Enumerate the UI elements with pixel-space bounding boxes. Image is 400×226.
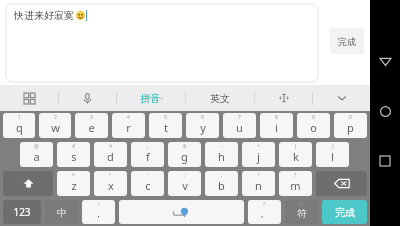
- staticText: 拼音·: [140, 91, 163, 105]
- staticText: ?: [263, 201, 266, 208]
- button[interactable]: 2: [39, 113, 71, 138]
- staticText: ?: [294, 172, 297, 179]
- button[interactable]: 4: [112, 113, 145, 138]
- staticText: n: [255, 178, 262, 193]
- button[interactable]: 123: [3, 200, 41, 224]
- staticText: 符: [297, 207, 307, 220]
- staticText: p: [347, 120, 354, 135]
- button[interactable]: Voice input: [59, 85, 116, 111]
- staticText: 6: [201, 114, 204, 121]
- button[interactable]: (: [279, 142, 312, 167]
- staticText: &: [183, 143, 187, 150]
- button[interactable]: Back: [374, 50, 396, 72]
- staticText: ￥: [108, 143, 113, 149]
- button[interactable]: Shift: [3, 171, 53, 196]
- button[interactable]: 快进来好寂寞: [6, 4, 318, 82]
- button[interactable]: :: [168, 171, 201, 196]
- button[interactable]: 0: [334, 113, 367, 138]
- button[interactable]: Move cursor: [255, 85, 312, 111]
- staticText: k: [293, 149, 299, 164]
- staticText: 完成: [335, 206, 355, 219]
- staticText: 2: [54, 114, 57, 121]
- staticText: f: [146, 149, 150, 164]
- staticText: z: [71, 178, 77, 193]
- button[interactable]: Keyboard layouts: [0, 85, 58, 111]
- staticText: ;: [221, 172, 223, 179]
- staticText: !: [98, 201, 100, 208]
- button[interactable]: @: [20, 142, 53, 167]
- staticText: 。: [260, 208, 269, 219]
- button[interactable]: !: [242, 171, 275, 196]
- button[interactable]: 3: [75, 113, 108, 138]
- button[interactable]: Space: [119, 200, 244, 224]
- staticText: b: [218, 178, 225, 193]
- button[interactable]: 拼音·: [117, 85, 185, 111]
- staticText: 7: [238, 114, 241, 121]
- staticText: ，: [94, 208, 103, 219]
- button[interactable]: 完成: [322, 200, 367, 224]
- staticText: t: [164, 120, 168, 135]
- button[interactable]: ': [131, 171, 164, 196]
- staticText: :: [184, 172, 186, 179]
- button[interactable]: +: [242, 142, 275, 167]
- staticText: v: [182, 178, 188, 193]
- staticText: s: [71, 149, 77, 164]
- staticText: -: [221, 143, 223, 150]
- button[interactable]: ;: [205, 171, 238, 196]
- button[interactable]: 7: [223, 113, 256, 138]
- staticText: 3: [90, 114, 93, 121]
- button[interactable]: 英文: [186, 85, 254, 111]
- button[interactable]: #: [57, 142, 90, 167]
- staticText: @: [34, 143, 39, 150]
- staticText: q: [16, 120, 23, 135]
- button[interactable]: ): [316, 142, 349, 167]
- staticText: a: [33, 149, 40, 164]
- button[interactable]: &: [168, 142, 201, 167]
- button[interactable]: 8: [260, 113, 293, 138]
- staticText: 快进来好寂寞: [14, 9, 74, 22]
- button[interactable]: ?: [248, 200, 281, 224]
- staticText: 8: [275, 114, 278, 121]
- button[interactable]: Recent apps: [374, 150, 396, 172]
- staticText: o: [310, 120, 317, 135]
- button[interactable]: ?: [279, 171, 312, 196]
- staticText: ○: [299, 201, 304, 207]
- button[interactable]: 5: [149, 113, 182, 138]
- button[interactable]: 中: [45, 200, 78, 224]
- button[interactable]: -: [205, 142, 238, 167]
- staticText: d: [107, 149, 114, 164]
- button[interactable]: !: [82, 200, 115, 224]
- staticText: 英文: [210, 92, 230, 105]
- staticText: j: [257, 149, 260, 164]
- button[interactable]: Backspace: [316, 171, 367, 196]
- button[interactable]: *: [57, 171, 90, 196]
- staticText: *: [72, 172, 75, 179]
- staticText: 1: [18, 114, 21, 121]
- button[interactable]: _: [131, 142, 164, 167]
- staticText: _: [146, 143, 149, 150]
- button[interactable]: 1: [3, 113, 35, 138]
- staticText: w: [51, 120, 60, 135]
- button[interactable]: ": [94, 171, 127, 196]
- button[interactable]: 9: [297, 113, 330, 138]
- button[interactable]: 完成: [330, 28, 364, 54]
- staticText: g: [181, 149, 188, 164]
- staticText: e: [88, 120, 95, 135]
- button[interactable]: Home: [374, 100, 396, 122]
- staticText: ): [332, 143, 334, 150]
- staticText: 123: [13, 205, 31, 219]
- staticText: m: [290, 178, 301, 193]
- button[interactable]: 6: [186, 113, 219, 138]
- staticText: 5: [164, 114, 167, 121]
- staticText: 4: [127, 114, 130, 121]
- staticText: ": [109, 172, 112, 179]
- staticText: x: [108, 178, 114, 193]
- staticText: y: [200, 120, 206, 135]
- staticText: ': [147, 172, 149, 179]
- button[interactable]: ○: [285, 200, 318, 224]
- staticText: u: [236, 120, 243, 135]
- button[interactable]: ￥: [94, 142, 127, 167]
- button[interactable]: Hide keyboard: [313, 85, 370, 111]
- staticText: r: [126, 120, 131, 135]
- staticText: i: [275, 120, 278, 135]
